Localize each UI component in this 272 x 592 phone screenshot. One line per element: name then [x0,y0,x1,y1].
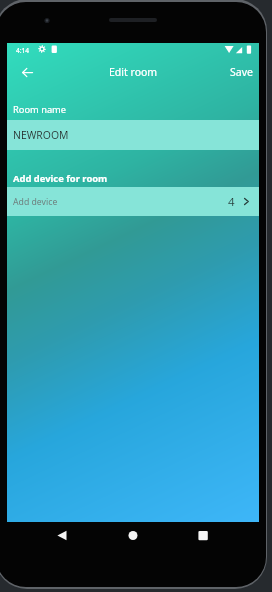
staticText: Room name [13,103,67,116]
staticText: Edit room [109,65,158,79]
staticText: 4 [228,194,235,210]
button[interactable]: Add device [7,187,259,216]
staticText: Add device for room [13,172,108,185]
staticText: NEWROOM [13,128,69,142]
staticText: Save [230,65,253,79]
button[interactable]: Save [224,58,259,86]
staticText: 4:14 [16,46,30,55]
staticText: Add device [13,196,58,208]
button[interactable]: Back [14,59,40,85]
button[interactable]: NEWROOM [7,120,259,150]
